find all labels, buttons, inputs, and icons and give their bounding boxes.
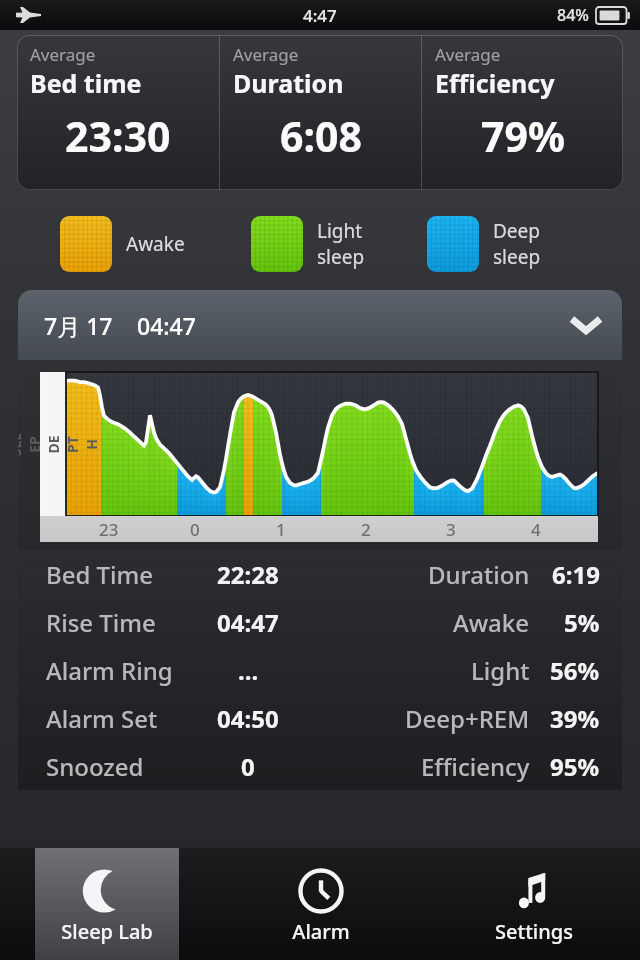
- button[interactable]: Awake: [60, 216, 185, 272]
- staticText: 23: [99, 518, 119, 541]
- staticText: sleep: [317, 244, 365, 270]
- staticText: 95%: [550, 750, 600, 783]
- staticText: 22:28: [217, 558, 279, 591]
- button[interactable]: Average: [17, 35, 219, 190]
- staticText: Sleep Lab: [61, 918, 153, 945]
- staticText: SLEEP DEPTH: [18, 431, 100, 457]
- staticText: Deep+REM: [405, 702, 530, 735]
- staticText: 56%: [550, 654, 600, 687]
- staticText: 1: [276, 518, 286, 541]
- staticText: 4: [531, 518, 541, 541]
- button[interactable]: Average: [422, 35, 623, 190]
- staticText: Duration: [428, 558, 530, 591]
- staticText: 2: [361, 518, 371, 541]
- staticText: Alarm Ring: [46, 654, 173, 687]
- staticText: 0: [241, 750, 255, 783]
- button[interactable]: Settings: [427, 848, 640, 960]
- staticText: Awake: [126, 231, 185, 257]
- staticText: 6:19: [552, 558, 600, 591]
- other: Collapse details: [570, 315, 602, 335]
- staticText: 39%: [550, 702, 600, 735]
- staticText: ...: [238, 654, 259, 687]
- staticText: 4:47: [303, 4, 337, 27]
- staticText: Efficiency: [421, 750, 530, 783]
- button[interactable]: Alarm Set: [18, 694, 622, 742]
- staticText: Awake: [453, 606, 530, 639]
- staticText: 23:30: [65, 108, 171, 164]
- button[interactable]: Alarm Ring: [18, 646, 622, 694]
- staticText: Average: [233, 43, 299, 66]
- button[interactable]: Alarm: [214, 848, 427, 960]
- button[interactable]: Bed Time: [18, 550, 622, 598]
- button[interactable]: Snoozed: [18, 742, 622, 790]
- staticText: Deep: [493, 218, 540, 244]
- staticText: Bed time: [30, 66, 142, 100]
- staticText: Alarm: [292, 918, 350, 945]
- button[interactable]: Light: [251, 216, 365, 272]
- button[interactable]: Sleep Lab: [0, 848, 214, 960]
- button[interactable]: Deep: [427, 216, 541, 272]
- staticText: Snoozed: [46, 750, 144, 783]
- staticText: sleep: [493, 244, 541, 270]
- staticText: Duration: [233, 66, 344, 100]
- staticText: 0: [190, 518, 200, 541]
- staticText: 04:47: [137, 310, 196, 341]
- staticText: Light: [317, 218, 363, 244]
- staticText: Light: [471, 654, 530, 687]
- staticText: Settings: [495, 918, 573, 945]
- staticText: Rise Time: [46, 606, 156, 639]
- staticText: 6:08: [280, 108, 362, 164]
- staticText: 3: [446, 518, 456, 541]
- staticText: Efficiency: [435, 66, 555, 100]
- staticText: 79%: [481, 108, 565, 164]
- staticText: 84%: [557, 4, 589, 26]
- staticText: 04:47: [217, 606, 279, 639]
- staticText: 04:50: [217, 702, 279, 735]
- staticText: 7月 17: [44, 310, 113, 341]
- staticText: Average: [435, 43, 501, 66]
- staticText: Average: [30, 43, 96, 66]
- staticText: 5%: [564, 606, 600, 639]
- staticText: Alarm Set: [46, 702, 158, 735]
- button[interactable]: Rise Time: [18, 598, 622, 646]
- button[interactable]: Average: [220, 35, 421, 190]
- button[interactable]: 7月 17: [18, 290, 622, 360]
- staticText: Bed Time: [46, 558, 154, 591]
